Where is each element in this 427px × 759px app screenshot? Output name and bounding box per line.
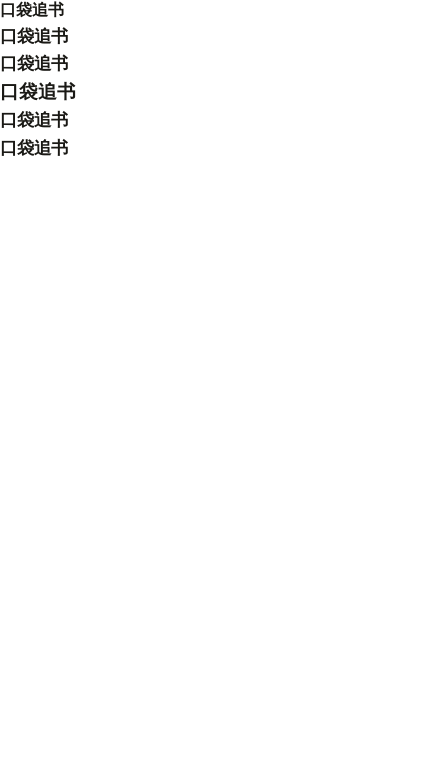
staticText: 口袋追书 [0,109,68,131]
staticText: 口袋追书 [0,0,64,20]
staticText: 口袋追书 [0,137,68,159]
staticText: 口袋追书 [0,26,68,47]
staticText: 口袋追书 [0,80,76,103]
staticText: 口袋追书 [0,53,68,74]
